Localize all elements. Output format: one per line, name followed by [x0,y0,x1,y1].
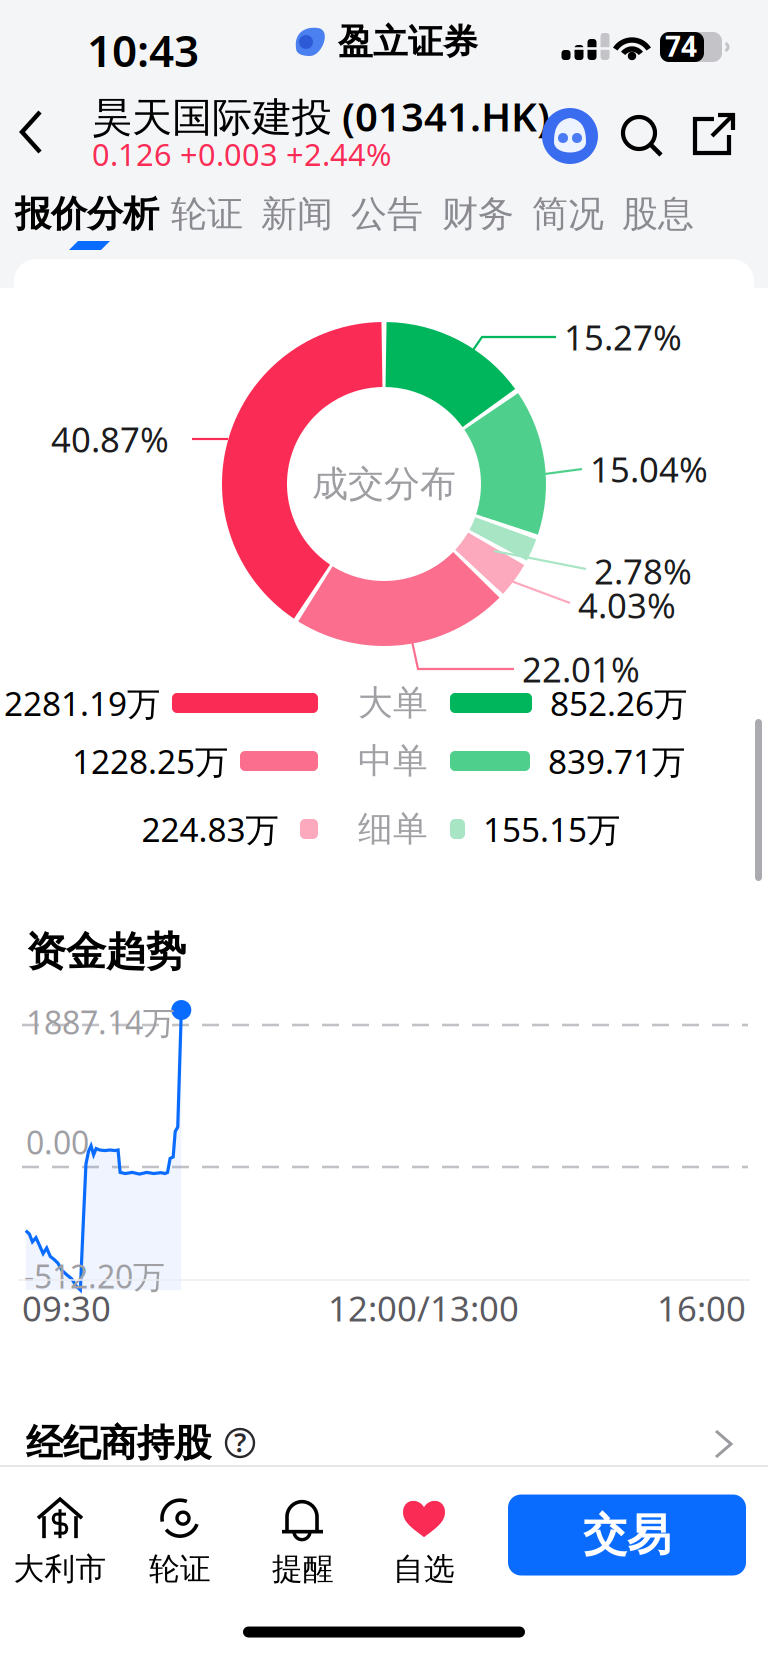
button[interactable]: 提醒 [243,1495,363,1587]
staticText: -512.20万 [24,1255,165,1297]
button[interactable]: 交易 [508,1494,746,1575]
staticText: 10:43 [87,21,199,79]
staticText: 轮证 [171,192,243,236]
button[interactable]: 新闻 [257,187,337,241]
staticText: 2.78% [594,548,692,594]
staticText: 成交分布 [312,462,456,506]
staticText: 轮证 [149,1550,211,1588]
button[interactable]: Back [0,92,74,172]
button[interactable]: 轮证 [167,187,247,241]
staticText: 自选 [393,1550,455,1588]
staticText: 交易 [583,1508,671,1562]
button[interactable]: 股息 [618,187,698,241]
staticText: 经纪商持股 [26,1420,211,1466]
staticText: 0.00 [26,1121,89,1163]
staticText: 12:00/13:00 [328,1285,519,1331]
button[interactable]: 财务 [438,187,518,241]
button[interactable]: 报价分析 [17,187,157,241]
staticText: 4.03% [578,582,676,628]
staticText: 盈立证券 [338,21,478,63]
staticText: 839.71万 [548,739,685,783]
staticText: 22.01% [522,646,640,692]
staticText: 细单 [358,808,428,850]
staticText: 大利市 [13,1550,106,1588]
staticText: 财务 [442,192,514,236]
button[interactable]: 轮证 [120,1495,240,1587]
staticText: 股息 [622,192,694,236]
staticText: 224.83万 [141,807,278,851]
staticText: 新闻 [261,192,333,236]
staticText: 1228.25万 [72,739,228,783]
staticText: 1887.14万 [26,1001,175,1043]
button[interactable]: Search [611,105,673,167]
staticText: 公告 [351,192,423,236]
staticText: ? [234,1424,246,1460]
staticText: 16:00 [657,1285,746,1331]
staticText: 09:30 [22,1285,111,1331]
staticText: 大单 [358,682,428,724]
staticText: 资金趋势 [26,927,186,976]
staticText: 中单 [358,740,428,782]
staticText: 提醒 [272,1550,334,1588]
staticText: 0.126 +0.003 +2.44% [92,134,391,174]
staticText: 852.26万 [550,681,687,725]
staticText: 155.15万 [483,807,620,851]
staticText: 15.27% [564,314,682,360]
button[interactable]: 经纪商持股 [0,1363,768,1523]
button[interactable]: 公告 [347,187,427,241]
button[interactable]: 大利市 [0,1495,120,1587]
staticText: 昊天国际建投 (01341.HK) [92,89,550,142]
button[interactable]: AI assistant [539,105,601,167]
staticText: 2281.19万 [4,681,160,725]
staticText: 简况 [532,192,604,236]
staticText: 报价分析 [15,192,159,236]
staticText: 40.87% [51,416,169,462]
button[interactable]: Share [682,105,744,167]
button[interactable]: 自选 [364,1495,484,1587]
staticText: 15.04% [590,446,708,492]
button[interactable]: 简况 [528,187,608,241]
staticText: 74 [665,27,697,65]
